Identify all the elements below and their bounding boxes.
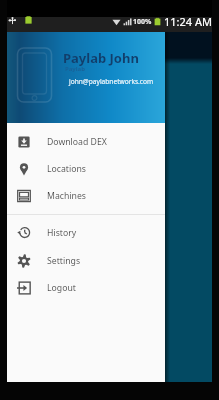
button[interactable]: Locations	[7, 155, 165, 183]
button[interactable]: Machines	[7, 182, 165, 210]
button[interactable]: History	[7, 219, 165, 247]
staticText: Paylab John	[63, 49, 139, 67]
staticText: 11:24 AM	[164, 14, 212, 29]
staticText: Locations	[47, 163, 87, 175]
staticText: john@paylabnetworks.com	[69, 77, 154, 86]
staticText: Download DEX	[47, 136, 107, 148]
staticText: Paylab	[65, 65, 85, 73]
button[interactable]: Download DEX	[7, 128, 165, 156]
staticText: Settings	[47, 255, 81, 267]
button[interactable]: Logout	[7, 274, 165, 302]
staticText: 100%	[133, 17, 152, 27]
staticText: History	[47, 227, 77, 239]
staticText: Machines	[47, 190, 86, 202]
button[interactable]: Settings	[7, 247, 165, 275]
staticText: Logout	[47, 282, 76, 294]
